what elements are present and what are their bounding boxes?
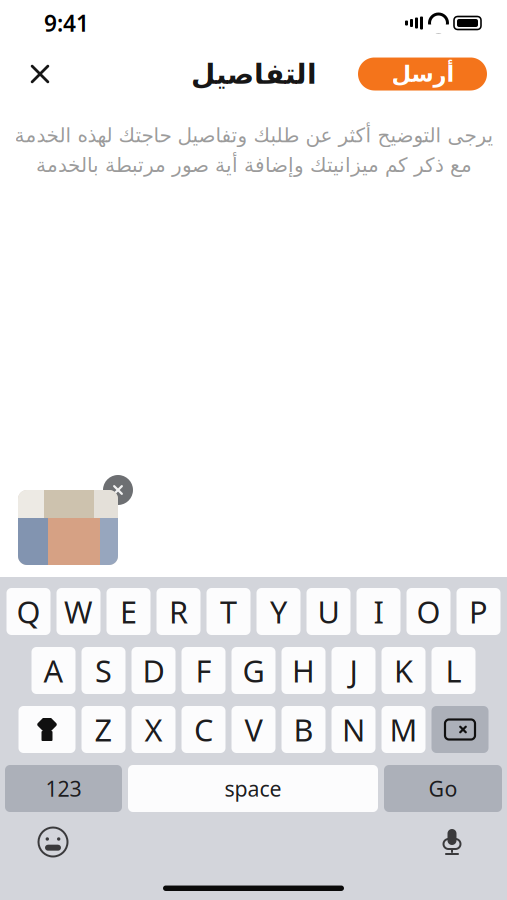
- button[interactable]: X: [131, 706, 175, 753]
- staticText: L: [445, 650, 461, 691]
- staticText: W: [64, 591, 93, 632]
- staticText: Q: [16, 591, 40, 632]
- button[interactable]: أرسل: [358, 57, 487, 90]
- staticText: K: [394, 650, 413, 691]
- staticText: P: [469, 591, 488, 632]
- staticText: O: [416, 591, 440, 632]
- button[interactable]: A: [31, 647, 75, 694]
- button[interactable]: Go: [384, 765, 502, 812]
- button[interactable]: F: [181, 647, 225, 694]
- staticText: R: [169, 591, 188, 632]
- staticText: Go: [428, 774, 457, 803]
- staticText: A: [43, 650, 63, 691]
- staticText: D: [142, 650, 164, 691]
- button[interactable]: C: [181, 706, 225, 753]
- staticText: J: [349, 650, 357, 691]
- button[interactable]: 123: [5, 765, 122, 812]
- staticText: space: [224, 774, 281, 803]
- staticText: B: [293, 709, 313, 750]
- button[interactable]: U: [306, 588, 350, 635]
- staticText: F: [195, 650, 211, 691]
- staticText: مع ذكر كم ميزانيتك وإضافة أية صور مرتبطة…: [35, 154, 471, 176]
- staticText: U: [317, 591, 339, 632]
- button[interactable]: P: [456, 588, 500, 635]
- staticText: I: [373, 591, 383, 632]
- button[interactable]: K: [381, 647, 425, 694]
- staticText: N: [342, 709, 365, 750]
- button[interactable]: B: [281, 706, 325, 753]
- staticText: G: [242, 650, 264, 691]
- button[interactable]: N: [331, 706, 375, 753]
- staticText: X: [144, 709, 162, 750]
- staticText: M: [389, 709, 417, 750]
- staticText: 123: [45, 774, 81, 803]
- button[interactable]: Y: [256, 588, 300, 635]
- button[interactable]: H: [281, 647, 325, 694]
- staticText: T: [220, 591, 237, 632]
- button[interactable]: space: [128, 765, 378, 812]
- button[interactable]: S: [81, 647, 125, 694]
- button[interactable]: E: [106, 588, 150, 635]
- button[interactable]: J: [331, 647, 375, 694]
- button[interactable]: Delete: [431, 706, 488, 753]
- button[interactable]: D: [131, 647, 175, 694]
- staticText: S: [95, 650, 112, 691]
- button[interactable]: Remove photo: [103, 475, 133, 505]
- staticText: أرسل: [391, 61, 454, 87]
- staticText: V: [244, 709, 262, 750]
- button[interactable]: Dictation: [429, 820, 475, 864]
- button[interactable]: Q: [6, 588, 50, 635]
- button[interactable]: I: [356, 588, 400, 635]
- staticText: 9:41: [44, 8, 89, 38]
- staticText: E: [120, 591, 137, 632]
- button[interactable]: Emoji: [30, 820, 76, 864]
- staticText: Z: [94, 709, 112, 750]
- staticText: يرجى التوضيح أكثر عن طلبك وتفاصيل حاجتك …: [14, 124, 493, 147]
- button[interactable]: O: [406, 588, 450, 635]
- staticText: C: [194, 709, 213, 750]
- button[interactable]: W: [56, 588, 100, 635]
- button[interactable]: Shift: [18, 706, 75, 753]
- staticText: التفاصيل: [190, 58, 316, 90]
- button[interactable]: T: [206, 588, 250, 635]
- button[interactable]: Z: [81, 706, 125, 753]
- button[interactable]: V: [231, 706, 275, 753]
- button[interactable]: R: [156, 588, 200, 635]
- staticText: H: [292, 650, 315, 691]
- button[interactable]: G: [231, 647, 275, 694]
- button[interactable]: M: [381, 706, 425, 753]
- button[interactable]: Close: [17, 51, 63, 97]
- staticText: Y: [270, 591, 287, 632]
- button[interactable]: L: [431, 647, 475, 694]
